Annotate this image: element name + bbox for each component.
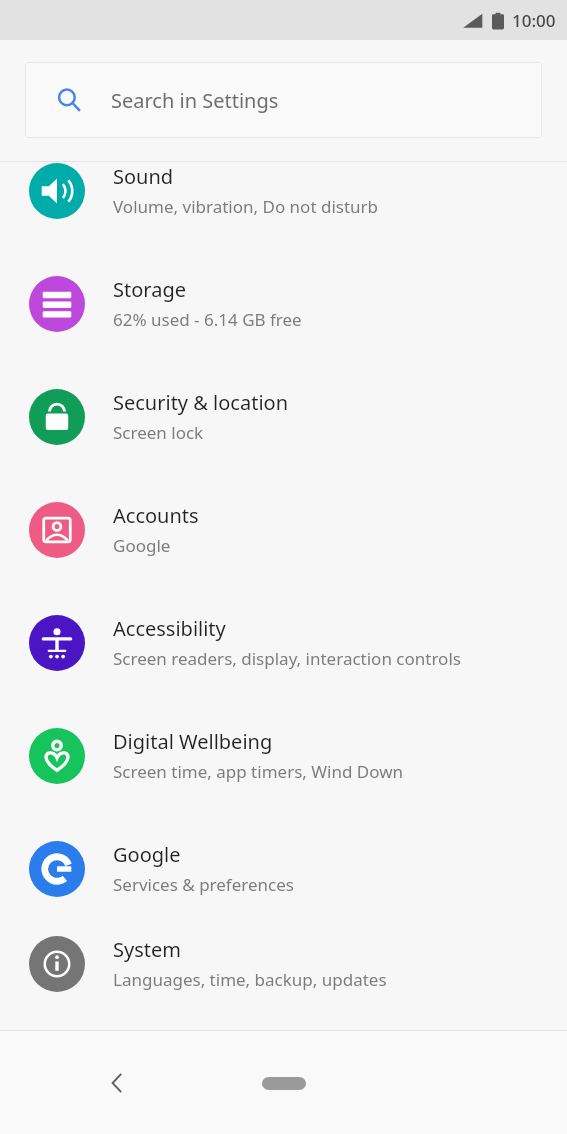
staticText: Services & preferences — [113, 873, 294, 896]
staticText: Storage — [113, 276, 186, 303]
button[interactable]: Search in Settings — [25, 62, 542, 138]
button[interactable]: Digital Wellbeing — [0, 699, 567, 812]
staticText: Google — [113, 534, 171, 557]
staticText: Security & location — [113, 389, 289, 416]
button[interactable]: Google — [0, 812, 567, 925]
button[interactable]: Security & location — [0, 360, 567, 473]
staticText: Sound — [113, 163, 174, 190]
button[interactable]: System — [0, 925, 567, 1002]
staticText: 10:00 — [512, 9, 556, 32]
button[interactable]: Accounts — [0, 473, 567, 586]
button[interactable]: Accessibility — [0, 586, 567, 699]
staticText: Accessibility — [113, 615, 226, 642]
staticText: 62% used - 6.14 GB free — [113, 308, 302, 331]
staticText: Screen readers, display, interaction con… — [113, 647, 461, 670]
staticText: Search in Settings — [111, 87, 279, 114]
staticText: Volume, vibration, Do not disturb — [113, 195, 379, 218]
button[interactable]: Home — [248, 1063, 320, 1103]
button[interactable]: Storage — [0, 247, 567, 360]
button[interactable]: Back — [92, 1058, 142, 1108]
staticText: Google — [113, 841, 181, 868]
staticText: Digital Wellbeing — [113, 728, 273, 755]
staticText: System — [113, 936, 181, 963]
staticText: Screen lock — [113, 421, 204, 444]
button[interactable]: Sound — [0, 134, 567, 247]
staticText: Screen time, app timers, Wind Down — [113, 760, 404, 783]
staticText: Languages, time, backup, updates — [113, 968, 387, 991]
staticText: Accounts — [113, 502, 199, 529]
